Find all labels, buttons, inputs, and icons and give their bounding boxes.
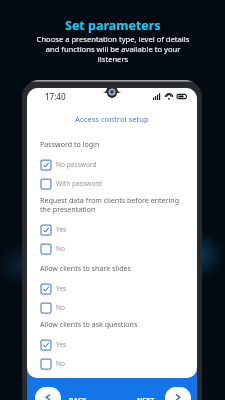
button[interactable]: With password xyxy=(38,174,158,193)
button[interactable]: Yes xyxy=(38,279,158,298)
button[interactable]: Back xyxy=(35,387,61,400)
button[interactable]: No xyxy=(38,239,158,258)
button[interactable]: No password xyxy=(38,155,158,174)
staticText: Yes xyxy=(56,284,67,293)
staticText: Choose a presentation type, level of det… xyxy=(33,34,193,64)
staticText: Allow clients to ask questions xyxy=(40,319,138,329)
staticText: Password to login xyxy=(40,139,100,149)
button[interactable]: No xyxy=(38,298,158,317)
staticText: No xyxy=(56,359,66,368)
staticText: Yes xyxy=(56,225,67,234)
staticText: No xyxy=(56,244,66,253)
staticText: the presentation xyxy=(40,204,96,214)
button[interactable]: Yes xyxy=(38,220,158,239)
staticText: Request data from clients before enterin… xyxy=(40,195,180,205)
staticText: Access control setup xyxy=(75,114,149,124)
staticText: No password xyxy=(56,160,97,169)
button[interactable]: Next xyxy=(165,387,191,400)
staticText: No xyxy=(56,303,66,312)
staticText: NEXT xyxy=(137,396,155,400)
staticText: With password xyxy=(56,179,102,188)
button[interactable]: Yes xyxy=(38,335,158,354)
staticText: 17:40 xyxy=(45,91,66,102)
staticText: Allow clients to share slides xyxy=(40,263,131,273)
button[interactable]: No xyxy=(38,354,158,373)
staticText: Set parameters xyxy=(65,17,161,34)
staticText: Yes xyxy=(56,340,67,349)
staticText: BACK xyxy=(69,396,87,400)
